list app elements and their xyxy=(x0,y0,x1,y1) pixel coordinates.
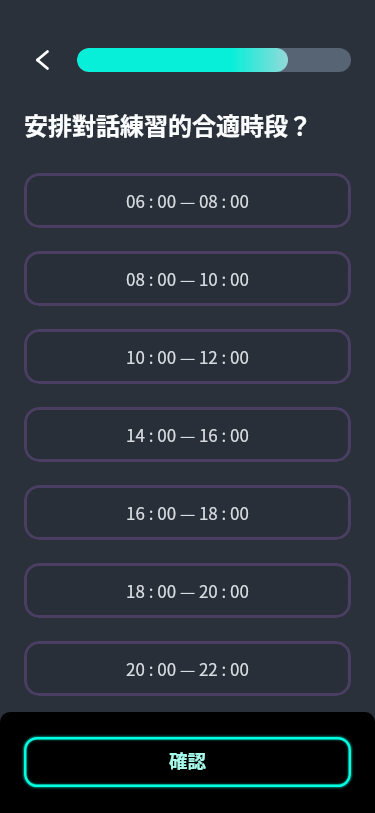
staticText: 20 : 00 — 22 : 00 xyxy=(126,656,249,681)
staticText: 安排對話練習的合適時段？ xyxy=(24,107,312,142)
staticText: 16 : 00 — 18 : 00 xyxy=(126,500,249,525)
button[interactable]: 06 : 00 — 08 : 00 xyxy=(24,173,351,228)
button[interactable]: 18 : 00 — 20 : 00 xyxy=(24,563,351,618)
staticText: 確認 xyxy=(169,747,207,774)
button[interactable]: 16 : 00 — 18 : 00 xyxy=(24,485,351,540)
staticText: 10 : 00 — 12 : 00 xyxy=(126,344,249,369)
button[interactable]: 20 : 00 — 22 : 00 xyxy=(24,641,351,696)
staticText: 14 : 00 — 16 : 00 xyxy=(126,422,249,447)
button[interactable]: 10 : 00 — 12 : 00 xyxy=(24,329,351,384)
button[interactable]: 14 : 00 — 16 : 00 xyxy=(24,407,351,462)
button[interactable]: 08 : 00 — 10 : 00 xyxy=(24,251,351,306)
staticText: 08 : 00 — 10 : 00 xyxy=(126,266,249,291)
staticText: 18 : 00 — 20 : 00 xyxy=(126,578,249,603)
button[interactable]: Back xyxy=(29,46,57,74)
staticText: 06 : 00 — 08 : 00 xyxy=(126,188,249,213)
button[interactable]: 確認 xyxy=(24,737,351,787)
